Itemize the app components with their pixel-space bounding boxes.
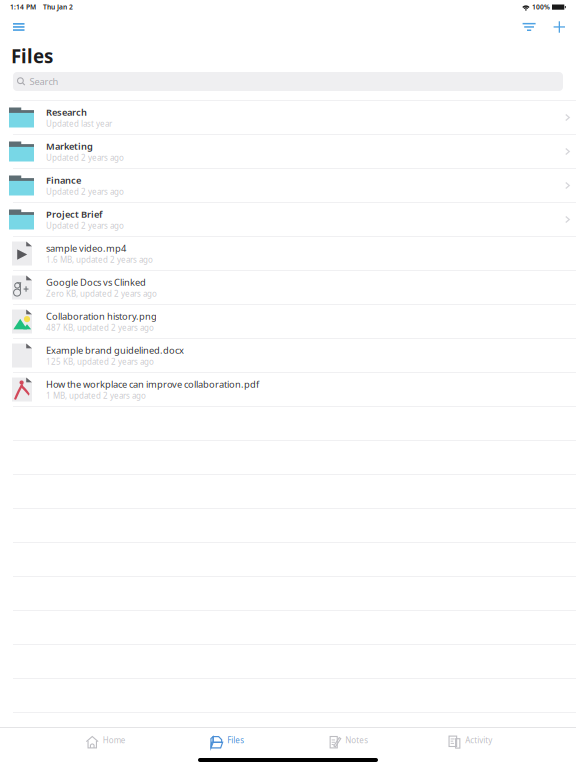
staticText: 100%	[532, 3, 550, 11]
staticText: 487 KB, updated 2 years ago	[46, 322, 154, 333]
staticText: Files	[11, 44, 53, 68]
staticText: Updated 2 years ago	[46, 220, 124, 231]
staticText: Google Docs vs Clinked	[46, 276, 146, 288]
button[interactable]: Research	[0, 101, 576, 134]
button[interactable]: Collaboration history.png	[0, 305, 576, 338]
button[interactable]: Notes	[288, 729, 409, 754]
button[interactable]: Sort and filter	[517, 17, 542, 37]
button[interactable]: Menu	[7, 17, 30, 37]
button[interactable]: Home	[45, 729, 166, 754]
staticText: Home	[103, 735, 126, 745]
staticText: sample video.mp4	[46, 242, 126, 254]
button[interactable]: Files	[166, 729, 288, 754]
staticText: Project Brief	[46, 208, 102, 220]
button[interactable]: Activity	[409, 729, 531, 754]
staticText: Notes	[345, 735, 368, 745]
button[interactable]: Example brand guidelined.docx	[0, 339, 576, 372]
button[interactable]: Marketing	[0, 135, 576, 168]
staticText: Thu Jan 2	[43, 3, 73, 11]
staticText: 125 KB, updated 2 years ago	[46, 356, 154, 367]
staticText: 1.6 MB, updated 2 years ago	[46, 254, 153, 265]
button[interactable]: sample video.mp4	[0, 237, 576, 270]
button[interactable]: Project Brief	[0, 203, 576, 236]
staticText: Collaboration history.png	[46, 310, 157, 322]
staticText: Zero KB, updated 2 years ago	[46, 288, 157, 299]
staticText: Updated 2 years ago	[46, 152, 124, 163]
staticText: Activity	[465, 735, 492, 745]
button[interactable]: Finance	[0, 169, 576, 202]
staticText: Finance	[46, 174, 81, 186]
staticText: How the workplace can improve collaborat…	[46, 378, 259, 390]
staticText: 1:14 PM	[10, 3, 36, 11]
staticText: Example brand guidelined.docx	[46, 344, 184, 356]
staticText: 1 MB, updated 2 years ago	[46, 390, 146, 401]
button[interactable]: Add	[549, 16, 570, 38]
staticText: Research	[46, 106, 87, 118]
staticText: Updated 2 years ago	[46, 186, 124, 197]
staticText: Files	[227, 735, 244, 745]
staticText: Marketing	[46, 140, 93, 152]
button[interactable]: Google Docs vs Clinked	[0, 271, 576, 304]
staticText: Updated last year	[46, 118, 112, 129]
staticText: Search	[29, 75, 58, 88]
button[interactable]: How the workplace can improve collaborat…	[0, 373, 576, 406]
